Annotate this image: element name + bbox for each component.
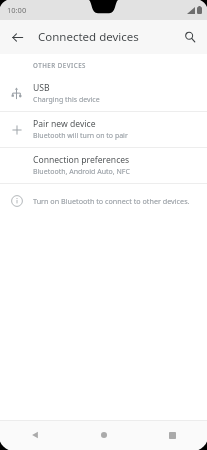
button[interactable]: Recent apps [138, 420, 207, 450]
staticText: Connection preferences [33, 154, 130, 166]
staticText: Charging this device [33, 95, 100, 105]
button[interactable]: USB [0, 76, 207, 111]
staticText: Pair new device [33, 118, 96, 130]
button[interactable]: Search [173, 20, 207, 54]
staticText: Connected devices [38, 29, 173, 45]
staticText: Bluetooth will turn on to pair [33, 131, 128, 141]
button[interactable]: Connection preferences [0, 148, 207, 183]
button[interactable]: Back [0, 420, 69, 450]
staticText: Turn on Bluetooth to connect to other de… [33, 196, 190, 206]
button[interactable]: Navigate up [0, 20, 34, 54]
staticText: OTHER DEVICES [33, 61, 86, 69]
staticText: Bluetooth, Android Auto, NFC [33, 167, 130, 177]
button[interactable]: Home [69, 420, 138, 450]
button[interactable]: Pair new device [0, 112, 207, 147]
staticText: USB [33, 82, 50, 94]
staticText: 10:00 [7, 5, 27, 15]
